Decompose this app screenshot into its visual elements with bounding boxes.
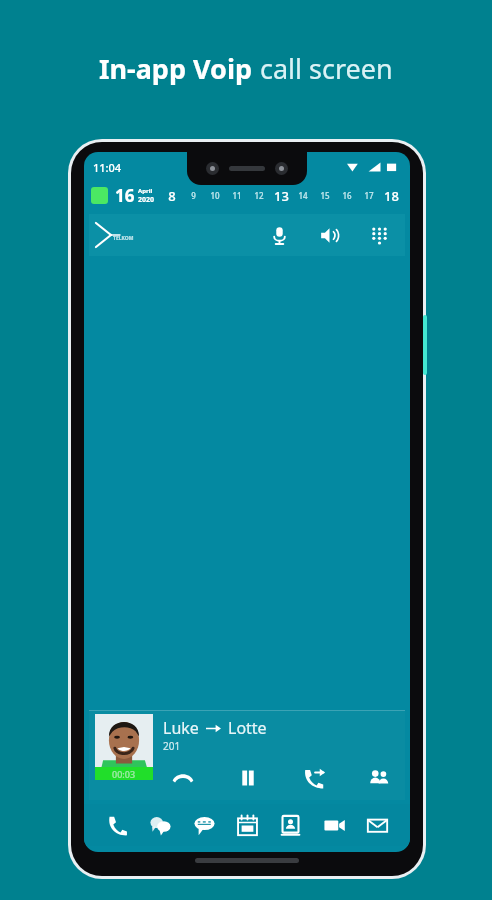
button[interactable]: Mute microphone xyxy=(265,221,293,249)
staticText: 10 xyxy=(210,190,220,201)
button[interactable]: Speaker xyxy=(315,221,343,249)
staticText: call screen xyxy=(260,50,393,87)
staticText: 16 xyxy=(115,184,135,207)
staticText: 9 xyxy=(191,190,196,201)
button[interactable]: Video call xyxy=(315,806,353,844)
button[interactable]: Calendar xyxy=(228,806,266,844)
staticText: In-app Voip xyxy=(99,50,260,87)
staticText: 8 xyxy=(168,187,176,205)
staticText: 00:03 xyxy=(112,768,136,780)
staticText: 14 xyxy=(298,190,308,201)
staticText: 201 xyxy=(163,739,181,753)
staticText: 2020 xyxy=(138,195,155,205)
staticText: Luke xyxy=(163,717,199,739)
staticText: 16 xyxy=(342,190,352,201)
button[interactable]: Transfer call xyxy=(294,763,334,793)
button[interactable]: 00:03 xyxy=(95,714,153,780)
staticText: 13 xyxy=(274,187,289,205)
staticText: 12 xyxy=(254,190,264,201)
staticText: TELKOM xyxy=(113,235,134,242)
button[interactable]: SMS xyxy=(185,806,223,844)
button[interactable]: Hold xyxy=(228,763,268,793)
staticText: 11:04 xyxy=(93,160,122,175)
button[interactable]: Dialpad xyxy=(365,221,393,249)
staticText: 15 xyxy=(320,190,330,201)
staticText: April xyxy=(138,187,153,195)
button[interactable]: Conference xyxy=(359,763,399,793)
staticText: 17 xyxy=(364,190,374,201)
staticText: 18 xyxy=(384,187,399,205)
staticText: 11 xyxy=(232,190,242,201)
button[interactable]: End call xyxy=(163,763,203,793)
button[interactable]: Contacts xyxy=(271,806,309,844)
button[interactable]: Chat xyxy=(141,806,179,844)
button[interactable]: Phone xyxy=(98,806,136,844)
staticText: Lotte xyxy=(228,717,267,739)
button[interactable]: Mail xyxy=(358,806,396,844)
